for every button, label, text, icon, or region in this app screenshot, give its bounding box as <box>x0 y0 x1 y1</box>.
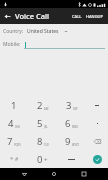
staticText: 8 <box>37 135 43 148</box>
button[interactable]: 1 <box>0 97 28 114</box>
button[interactable]: Done <box>86 150 108 168</box>
staticText: WXYZ <box>72 143 79 147</box>
button[interactable]: 9 <box>57 132 86 150</box>
staticText: ABC <box>44 107 49 111</box>
staticText: GHI <box>15 125 20 129</box>
button[interactable]: 8 <box>28 132 57 150</box>
button[interactable]: Recent apps <box>78 168 90 180</box>
staticText: 0 <box>37 153 43 166</box>
button[interactable]: Back <box>18 168 30 180</box>
button[interactable]: 7 <box>0 132 28 150</box>
staticText: TUV <box>44 143 49 147</box>
staticText: # <box>15 156 19 163</box>
staticText: Country: <box>3 28 24 35</box>
button[interactable]: United States <box>27 27 68 36</box>
button[interactable]: 4 <box>0 114 28 132</box>
staticText: CALL <box>72 14 82 19</box>
staticText: 5 <box>37 117 43 130</box>
staticText: Voice Call <box>15 11 50 21</box>
staticText: Mobile: <box>3 41 21 48</box>
button[interactable]: Delete <box>86 132 108 150</box>
staticText: 1 <box>11 99 17 112</box>
staticText: JKL <box>44 125 48 129</box>
button[interactable]: 6 <box>57 114 86 132</box>
staticText: + <box>44 156 48 164</box>
staticText: United States <box>27 28 59 35</box>
staticText: HANGUP <box>86 14 104 19</box>
button[interactable]: * <box>0 150 28 168</box>
staticText: PQRS <box>14 143 21 147</box>
button[interactable] <box>24 40 105 49</box>
staticText: 4 <box>8 117 14 130</box>
button[interactable]: HANGUP <box>84 11 106 22</box>
button[interactable]: 3 <box>57 97 86 114</box>
button[interactable]: 5 <box>28 114 57 132</box>
button[interactable] <box>57 150 86 168</box>
button[interactable]: 0 <box>28 150 57 168</box>
button[interactable]: 2 <box>28 97 57 114</box>
staticText: 2 <box>37 99 43 112</box>
staticText: MNO <box>72 125 79 129</box>
staticText: * <box>10 155 14 163</box>
button[interactable]: Back <box>1 10 13 22</box>
staticText: 6 <box>65 117 71 130</box>
staticText: 9 <box>65 135 71 148</box>
staticText: 3 <box>66 99 72 112</box>
button[interactable]: CALL <box>70 11 84 22</box>
staticText: 7 <box>7 135 13 148</box>
button[interactable] <box>86 97 108 114</box>
button[interactable]: Home <box>48 168 60 180</box>
staticText: DEF <box>73 107 78 111</box>
button[interactable] <box>86 114 108 132</box>
